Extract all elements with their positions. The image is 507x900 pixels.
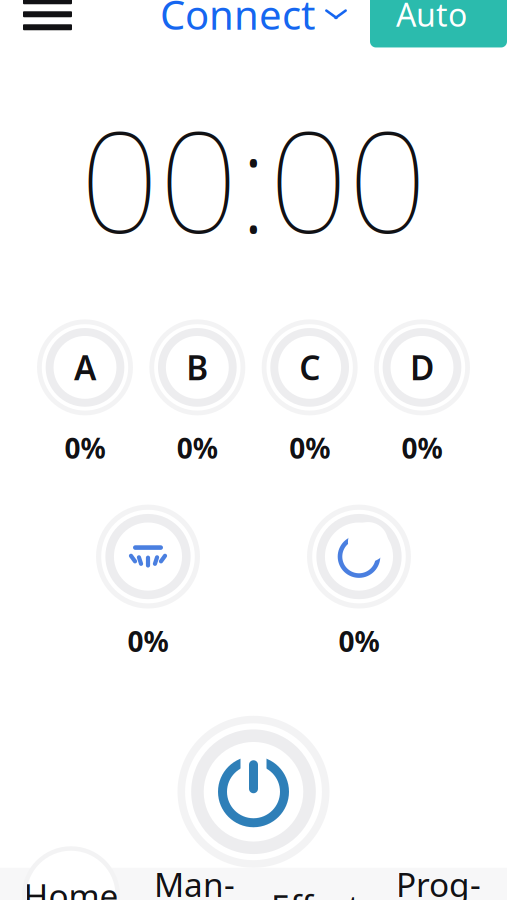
button[interactable]: Power — [177, 716, 329, 868]
staticText: 0% — [64, 429, 105, 467]
staticText: B — [186, 345, 208, 390]
staticText: C — [299, 345, 320, 390]
staticText: 0% — [401, 429, 442, 467]
staticText: A — [74, 345, 96, 390]
staticText: 0% — [338, 623, 379, 660]
button[interactable]: Menu — [11, 0, 84, 40]
staticText: 0% — [177, 429, 218, 467]
staticText: Connect — [160, 0, 315, 41]
button[interactable]: Light — [96, 505, 200, 660]
staticText: Effect — [271, 884, 360, 900]
staticText: D — [410, 345, 434, 390]
button[interactable]: Home — [22, 846, 120, 900]
button[interactable]: Night mode — [307, 505, 411, 660]
button[interactable]: A — [37, 319, 133, 467]
button[interactable]: Connect — [152, 0, 355, 47]
staticText: Home — [23, 873, 118, 900]
button[interactable]: Program — [382, 850, 495, 900]
button[interactable]: D — [374, 319, 470, 467]
button[interactable]: Manual — [140, 850, 249, 900]
button[interactable]: Auto — [370, 0, 507, 47]
staticText: Manual — [154, 862, 235, 900]
button[interactable]: Effect — [257, 872, 374, 900]
staticText: Program — [396, 862, 481, 900]
button[interactable]: B — [149, 319, 245, 467]
staticText: 00:00 — [80, 87, 427, 271]
staticText: 0% — [127, 623, 168, 660]
staticText: Auto — [396, 0, 467, 35]
staticText: 0% — [289, 429, 330, 467]
button[interactable]: C — [262, 319, 358, 467]
